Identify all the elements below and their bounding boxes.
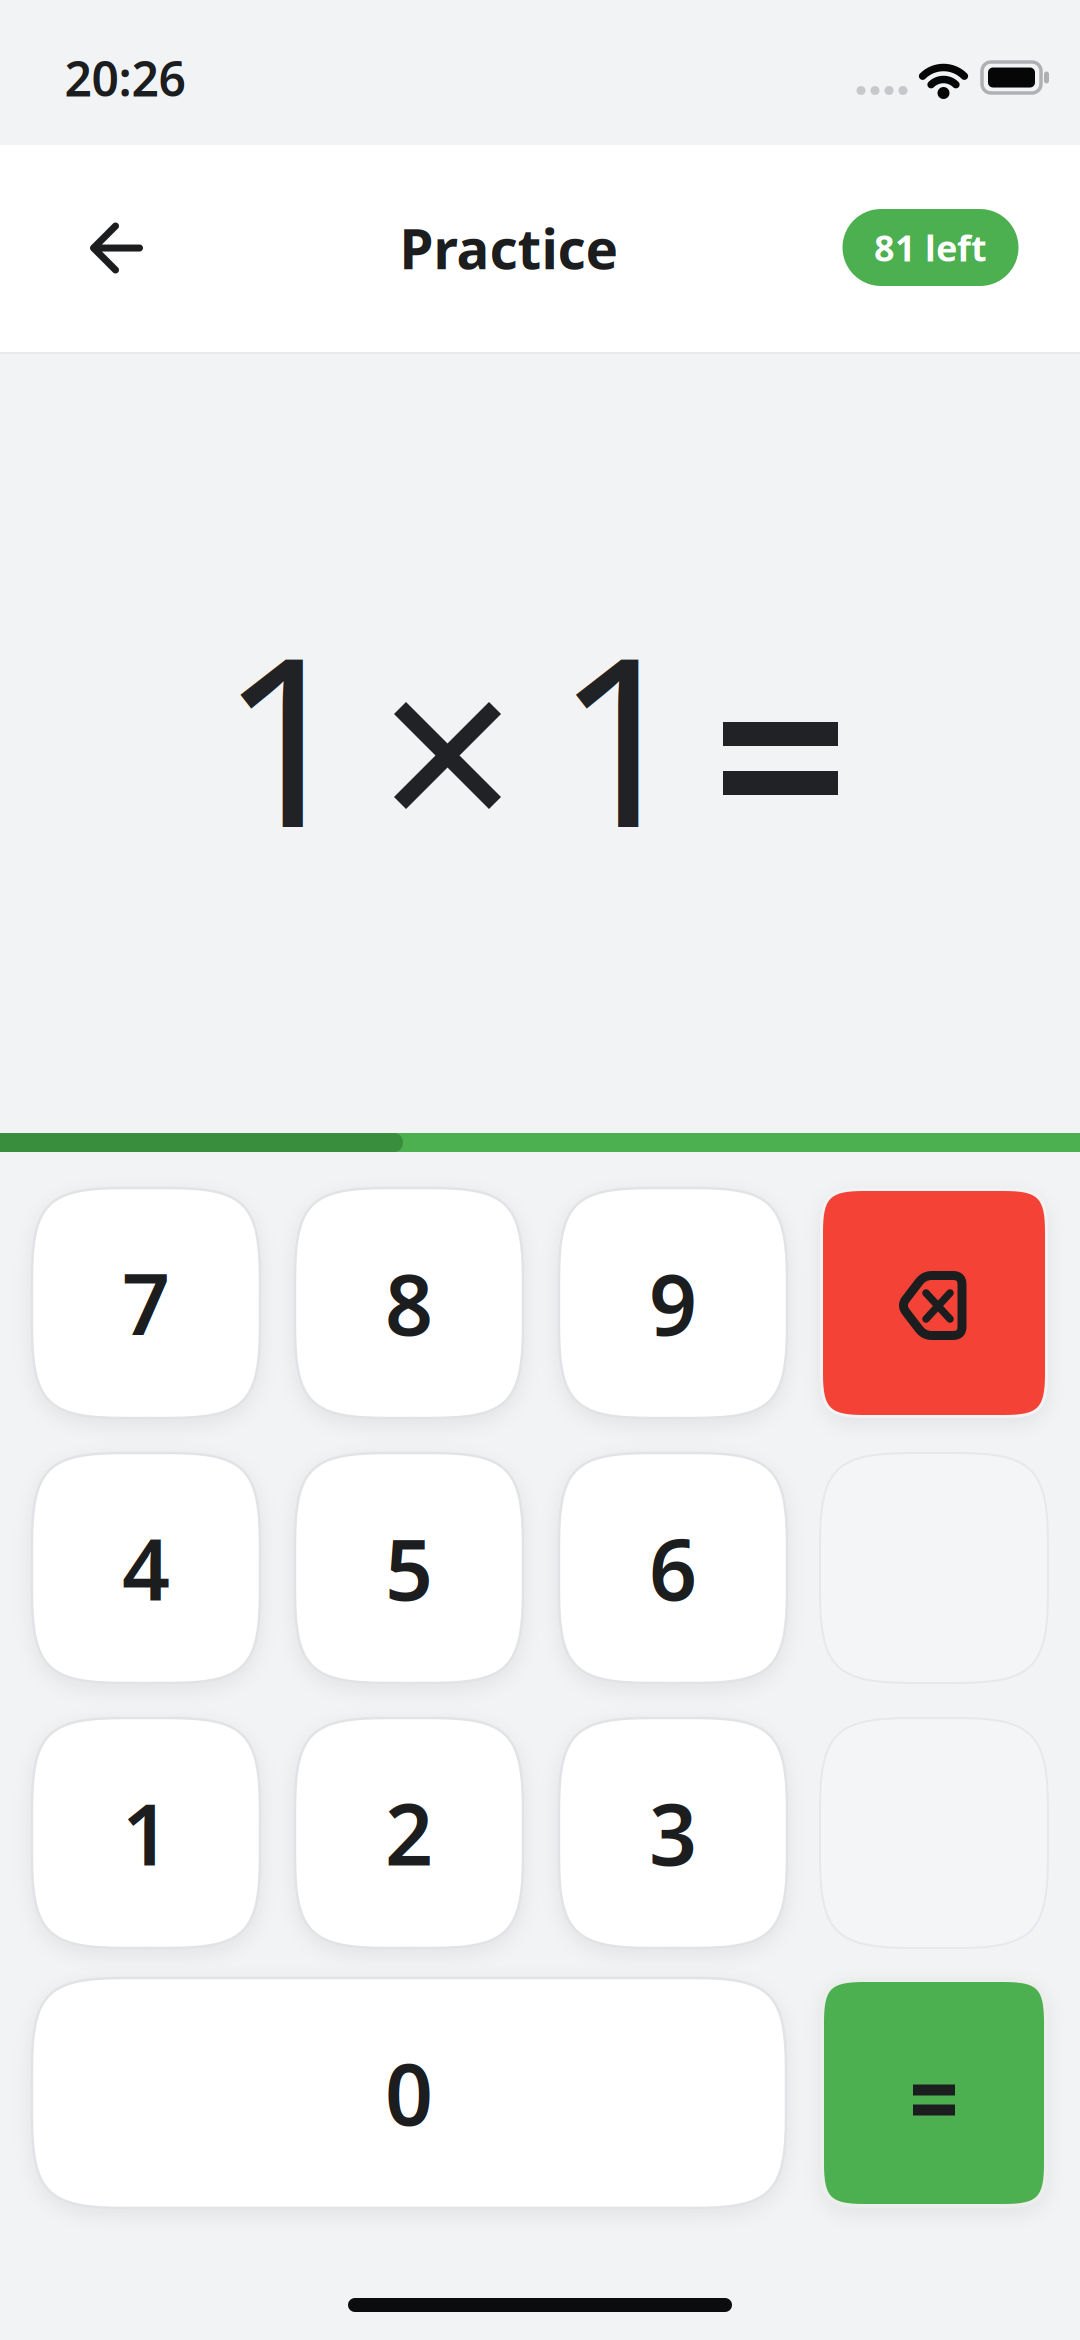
button[interactable]: 7 (32, 1188, 260, 1418)
button[interactable]: 8 (295, 1188, 523, 1418)
button[interactable]: 2 (295, 1718, 523, 1948)
button[interactable]: 3 (559, 1718, 787, 1948)
staticText: 1 (555, 580, 689, 892)
staticText: 1 (219, 580, 353, 892)
button[interactable]: Delete (820, 1188, 1048, 1418)
staticText: 1 (122, 1777, 170, 1889)
button[interactable]: 4 (32, 1453, 260, 1683)
staticText: 81 left (874, 224, 987, 271)
staticText: 4 (122, 1512, 170, 1624)
staticText: Practice (399, 212, 618, 284)
button[interactable]: 5 (295, 1453, 523, 1683)
staticText: 3 (649, 1777, 697, 1889)
staticText: 0 (385, 2037, 433, 2149)
staticText: 8 (385, 1247, 433, 1359)
staticText: 20:26 (64, 46, 185, 110)
button[interactable]: Back (83, 216, 147, 280)
button[interactable]: Equals (820, 1978, 1048, 2208)
staticText: 5 (385, 1512, 433, 1624)
staticText: 7 (122, 1247, 170, 1359)
button[interactable]: 9 (559, 1188, 787, 1418)
button[interactable]: 1 (32, 1718, 260, 1948)
button[interactable]: 6 (559, 1453, 787, 1683)
button[interactable]: 0 (32, 1978, 786, 2208)
staticText: 9 (649, 1247, 697, 1359)
staticText: 2 (385, 1777, 433, 1889)
staticText: 6 (649, 1512, 697, 1624)
